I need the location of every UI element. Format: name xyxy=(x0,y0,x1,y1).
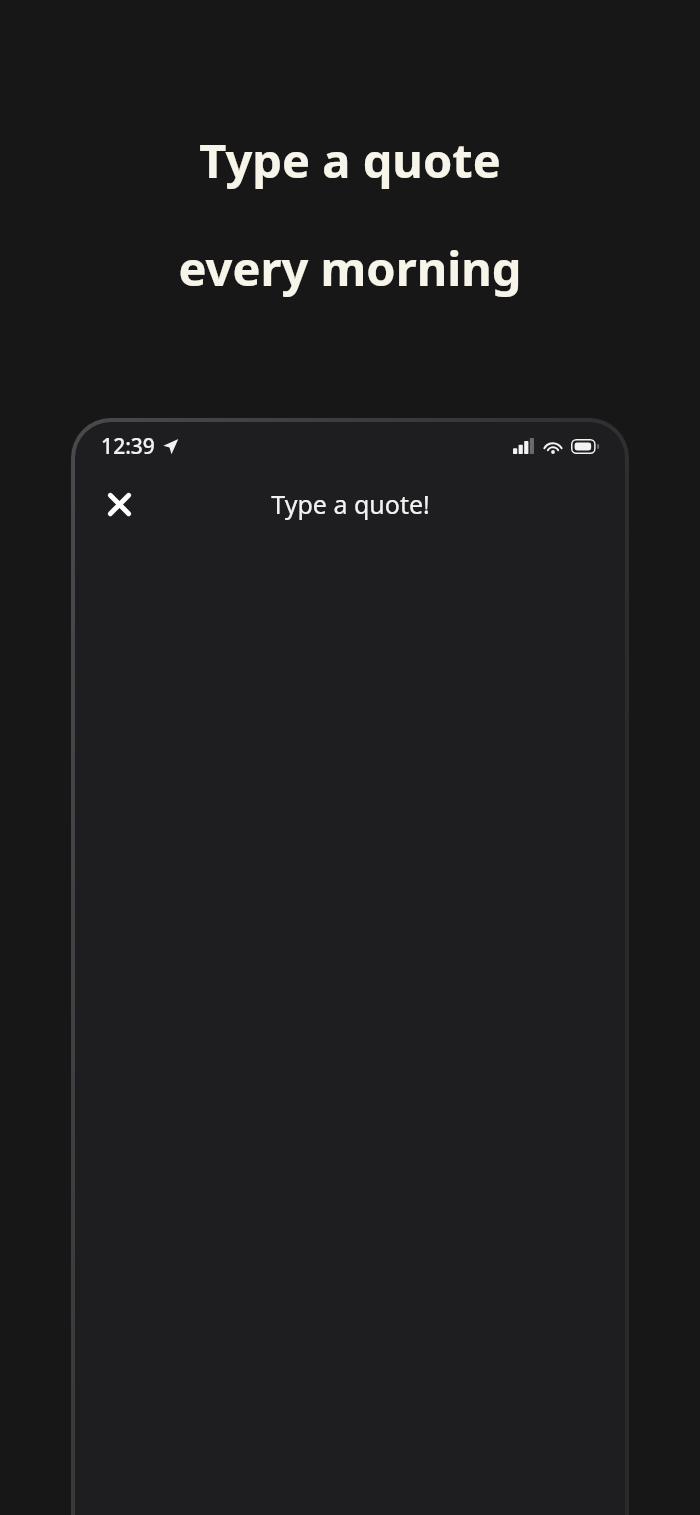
staticText: Type a quote xyxy=(199,128,501,192)
staticText: 12:39 xyxy=(101,432,155,461)
staticText: Type a quote! xyxy=(271,487,430,521)
button[interactable]: Close xyxy=(97,482,141,526)
staticText: every morning xyxy=(178,236,522,300)
